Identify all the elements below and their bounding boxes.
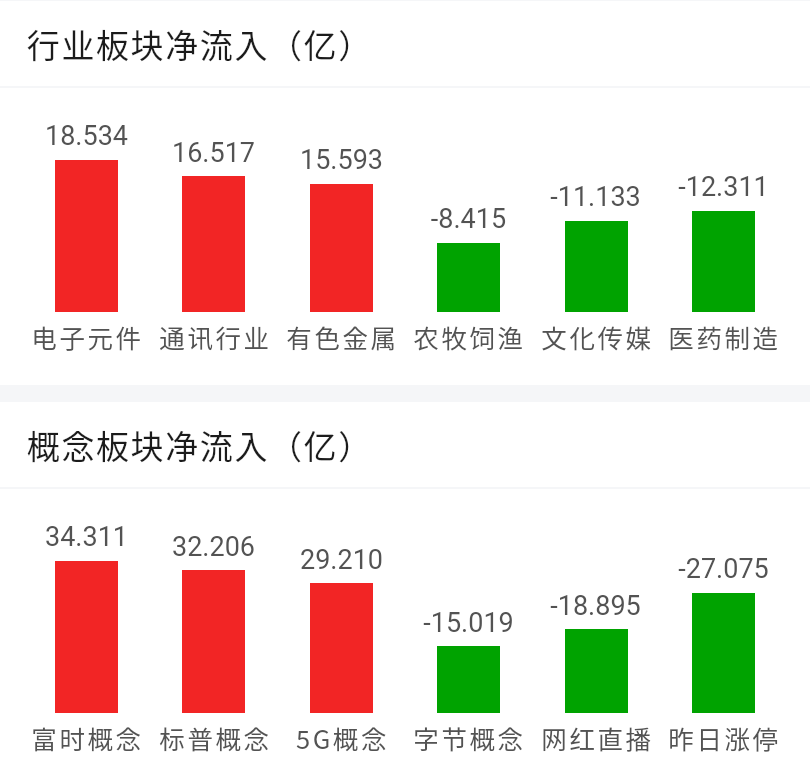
staticText: -12.311 bbox=[660, 171, 787, 203]
staticText: 概念板块净流入（亿） bbox=[26, 421, 372, 469]
staticText: 32.206 bbox=[150, 531, 277, 563]
staticText: 行业板块净流入（亿） bbox=[26, 20, 372, 68]
staticText: 有色金属 bbox=[279, 318, 406, 355]
button[interactable]: 标普概念 32.206 bbox=[150, 489, 277, 780]
button[interactable]: 富时概念 34.311 bbox=[23, 489, 150, 780]
button[interactable]: 医药制造 -12.311 bbox=[660, 88, 787, 385]
button[interactable]: 字节概念 -15.019 bbox=[405, 489, 532, 780]
button[interactable]: 文化传媒 -11.133 bbox=[532, 88, 659, 385]
button[interactable]: 概念板块净流入（亿） bbox=[0, 402, 810, 487]
staticText: 18.534 bbox=[23, 120, 150, 152]
staticText: 医药制造 bbox=[661, 318, 788, 355]
button[interactable]: 有色金属 15.593 bbox=[278, 88, 405, 385]
staticText: 农牧饲渔 bbox=[406, 318, 533, 355]
staticText: -15.019 bbox=[405, 607, 532, 639]
staticText: 16.517 bbox=[150, 137, 277, 169]
staticText: 5G概念 bbox=[279, 719, 406, 756]
staticText: 富时概念 bbox=[24, 719, 151, 756]
staticText: 电子元件 bbox=[24, 318, 151, 355]
button[interactable]: 通讯行业 16.517 bbox=[150, 88, 277, 385]
staticText: -8.415 bbox=[405, 203, 532, 235]
staticText: 34.311 bbox=[23, 521, 150, 553]
button[interactable]: 农牧饲渔 -8.415 bbox=[405, 88, 532, 385]
staticText: 昨日涨停 bbox=[661, 719, 788, 756]
staticText: 网红直播 bbox=[534, 719, 661, 756]
button[interactable]: 网红直播 -18.895 bbox=[532, 489, 659, 780]
button[interactable]: 5G概念 29.210 bbox=[278, 489, 405, 780]
button[interactable]: 电子元件 18.534 bbox=[23, 88, 150, 385]
staticText: 通讯行业 bbox=[152, 318, 279, 355]
staticText: 字节概念 bbox=[406, 719, 533, 756]
staticText: -11.133 bbox=[532, 181, 659, 213]
staticText: 29.210 bbox=[278, 544, 405, 576]
staticText: -27.075 bbox=[660, 553, 787, 585]
staticText: -18.895 bbox=[532, 590, 659, 622]
button[interactable]: 昨日涨停 -27.075 bbox=[660, 489, 787, 780]
staticText: 标普概念 bbox=[152, 719, 279, 756]
staticText: 15.593 bbox=[278, 144, 405, 176]
button[interactable]: 行业板块净流入（亿） bbox=[0, 1, 810, 86]
staticText: 文化传媒 bbox=[534, 318, 661, 355]
